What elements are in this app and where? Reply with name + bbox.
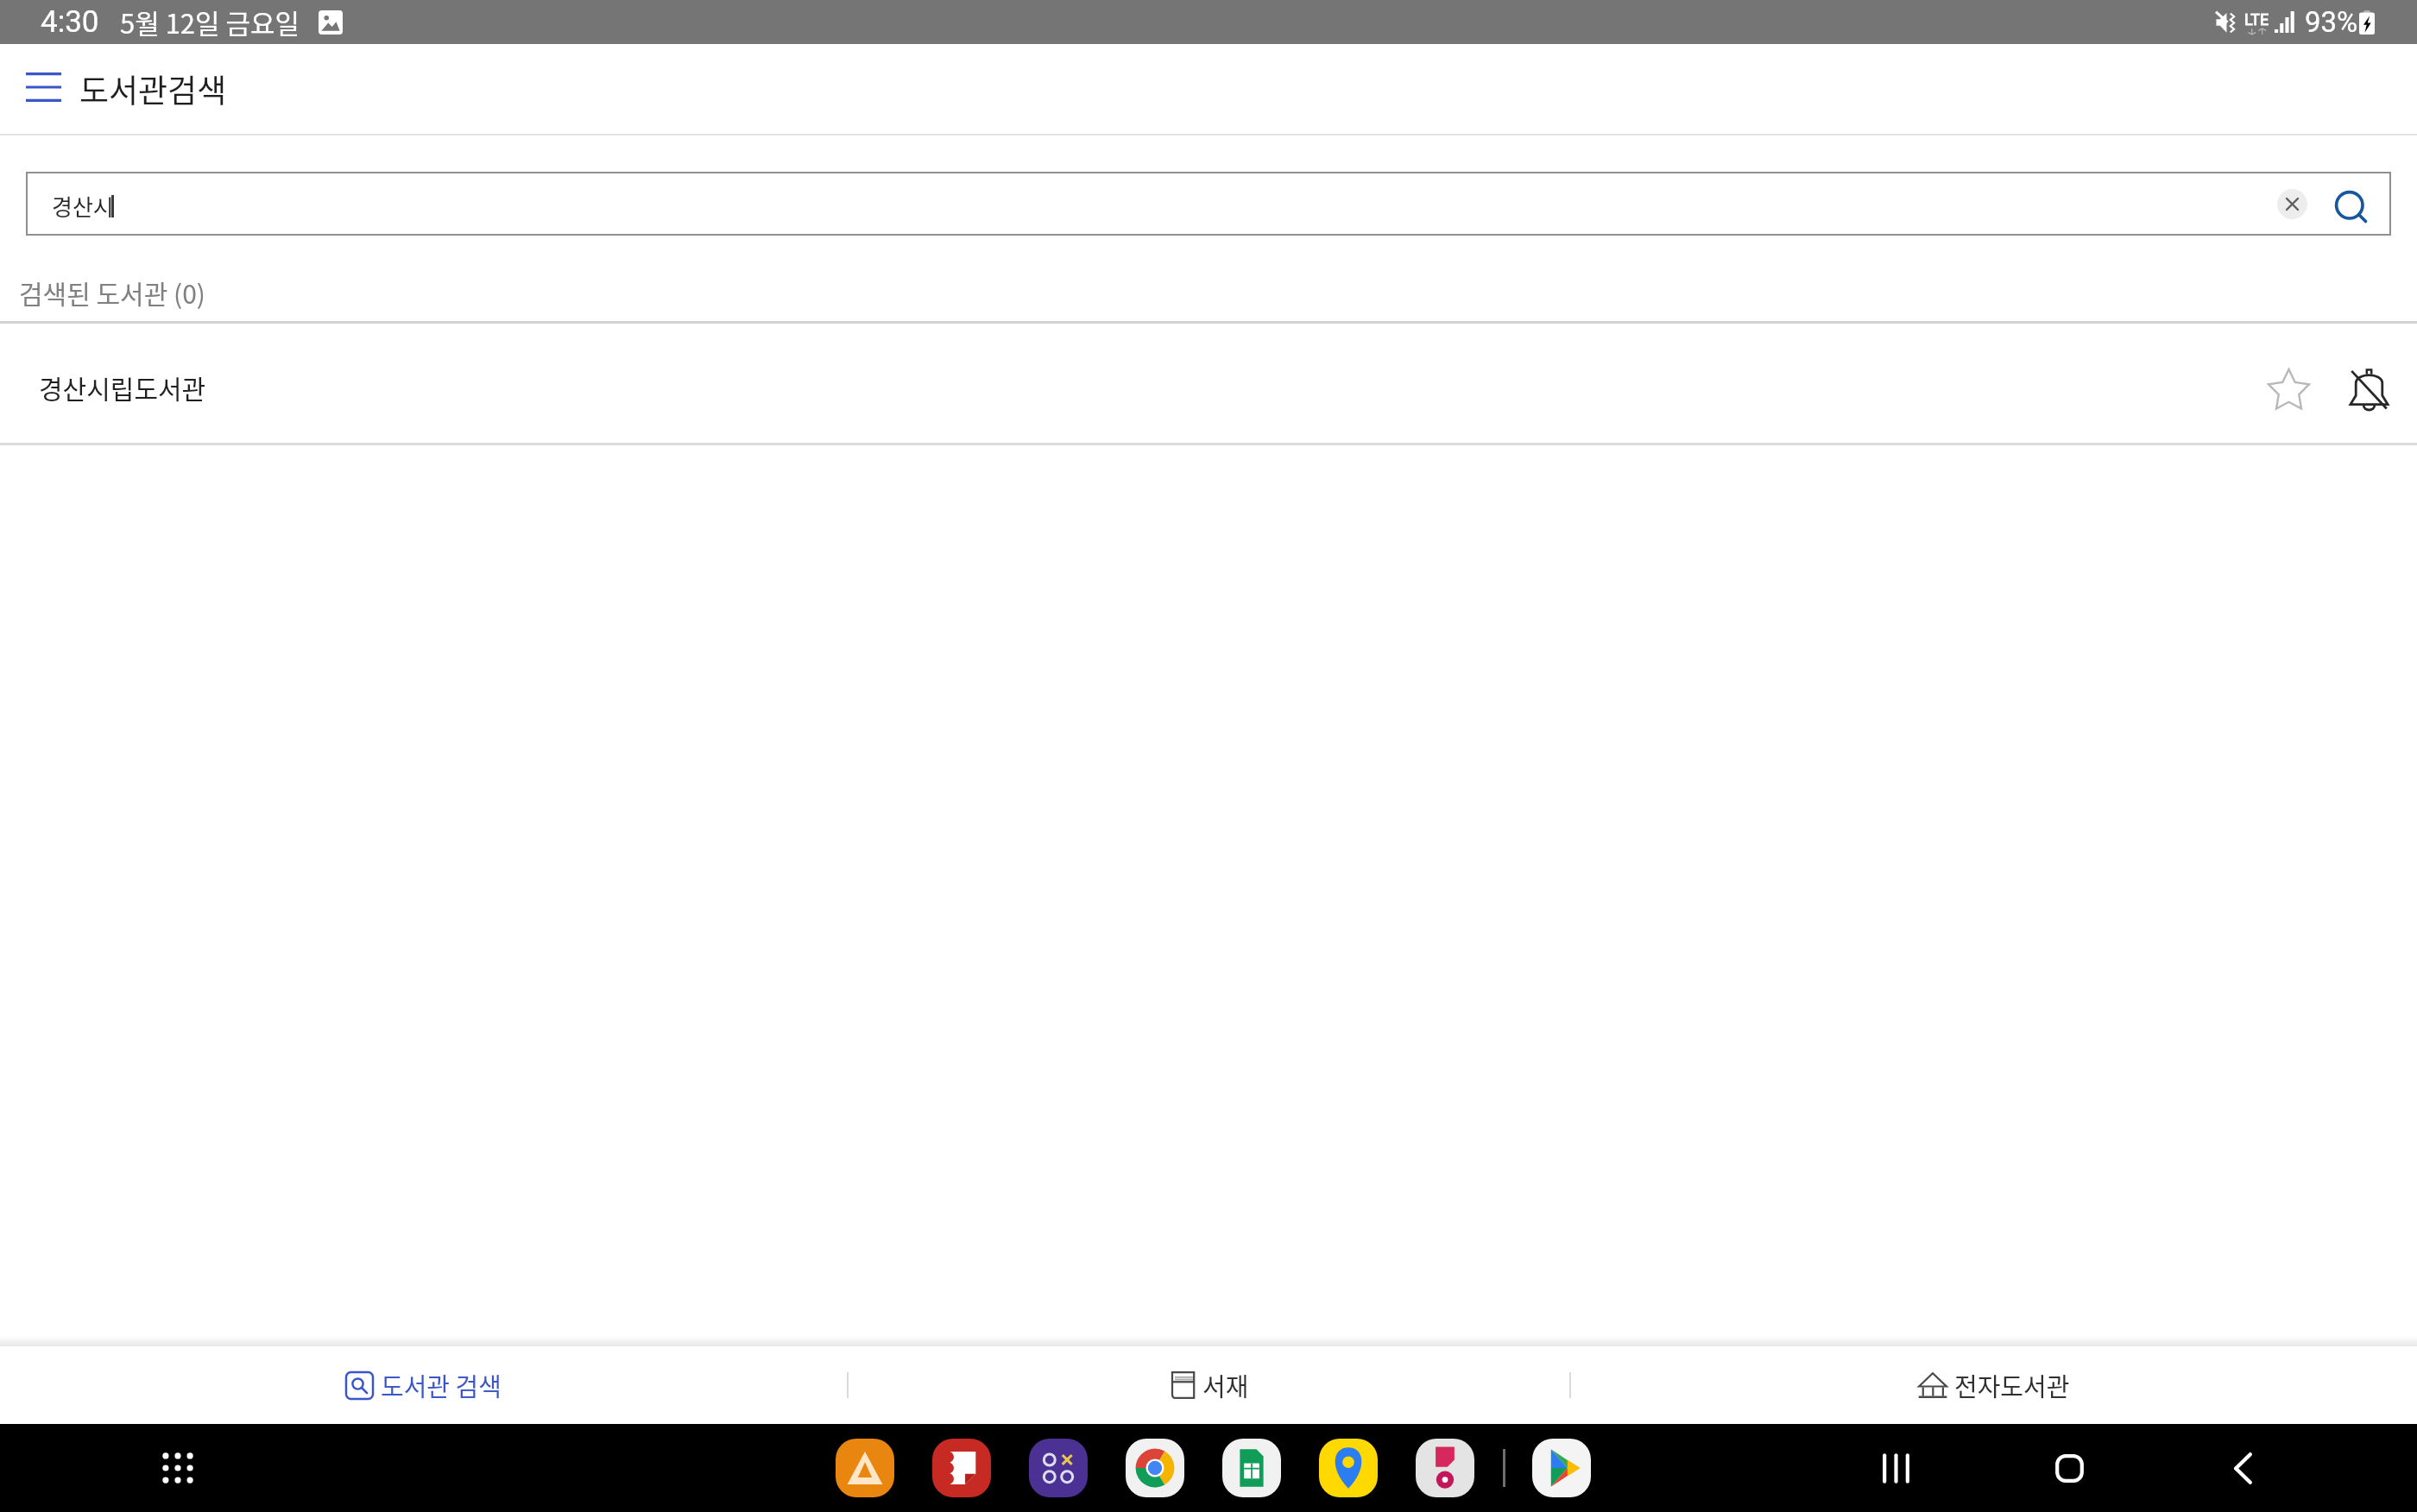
staticText: 경산시 [52,190,114,223]
button[interactable]: 모든 앱 [152,1442,204,1494]
staticText: 4:30 [41,4,99,40]
staticText: 도서관검색 [79,66,227,112]
staticText: 93% [2305,5,2358,39]
button[interactable]: 폴더 [1416,1439,1474,1497]
staticText: LTE [2244,10,2269,28]
button[interactable]: 지도 [1319,1439,1378,1497]
button[interactable]: 경산시립도서관 [0,324,2417,443]
button[interactable]: 최근 앱 [1844,1424,1947,1512]
button[interactable]: 전자도서관 [1571,1346,2417,1424]
staticText: 전자도서관 [1954,1367,2070,1403]
button[interactable]: Chrome [1126,1439,1184,1497]
button[interactable]: 메뉴 [12,56,74,118]
button[interactable]: 홈 [2017,1424,2121,1512]
staticText: 5월 12일 금요일 [120,3,300,41]
button[interactable]: Play 스토어 [1532,1439,1591,1497]
button[interactable]: 게임 런처 [1029,1439,1088,1497]
staticText: 경산시립도서관 [39,369,206,406]
staticText: 도서관 검색 [381,1367,502,1403]
button[interactable]: 뒤로 [2191,1424,2294,1512]
button[interactable]: 검색 [2325,181,2376,231]
staticText: 검색된 도서관 (0) [19,274,205,311]
staticText: 서재 [1202,1367,1249,1403]
button[interactable]: 노트 [932,1439,991,1497]
button[interactable]: Sheets [1222,1439,1281,1497]
button[interactable]: 즐겨찾기 [2251,352,2325,426]
button[interactable]: 지우기 [2267,179,2317,229]
button[interactable]: 알림 끄기 [2332,351,2406,425]
button[interactable]: 서재 [849,1346,1569,1424]
button[interactable]: 도서관 검색 [0,1346,847,1424]
button[interactable]: 갤러리 [836,1439,894,1497]
